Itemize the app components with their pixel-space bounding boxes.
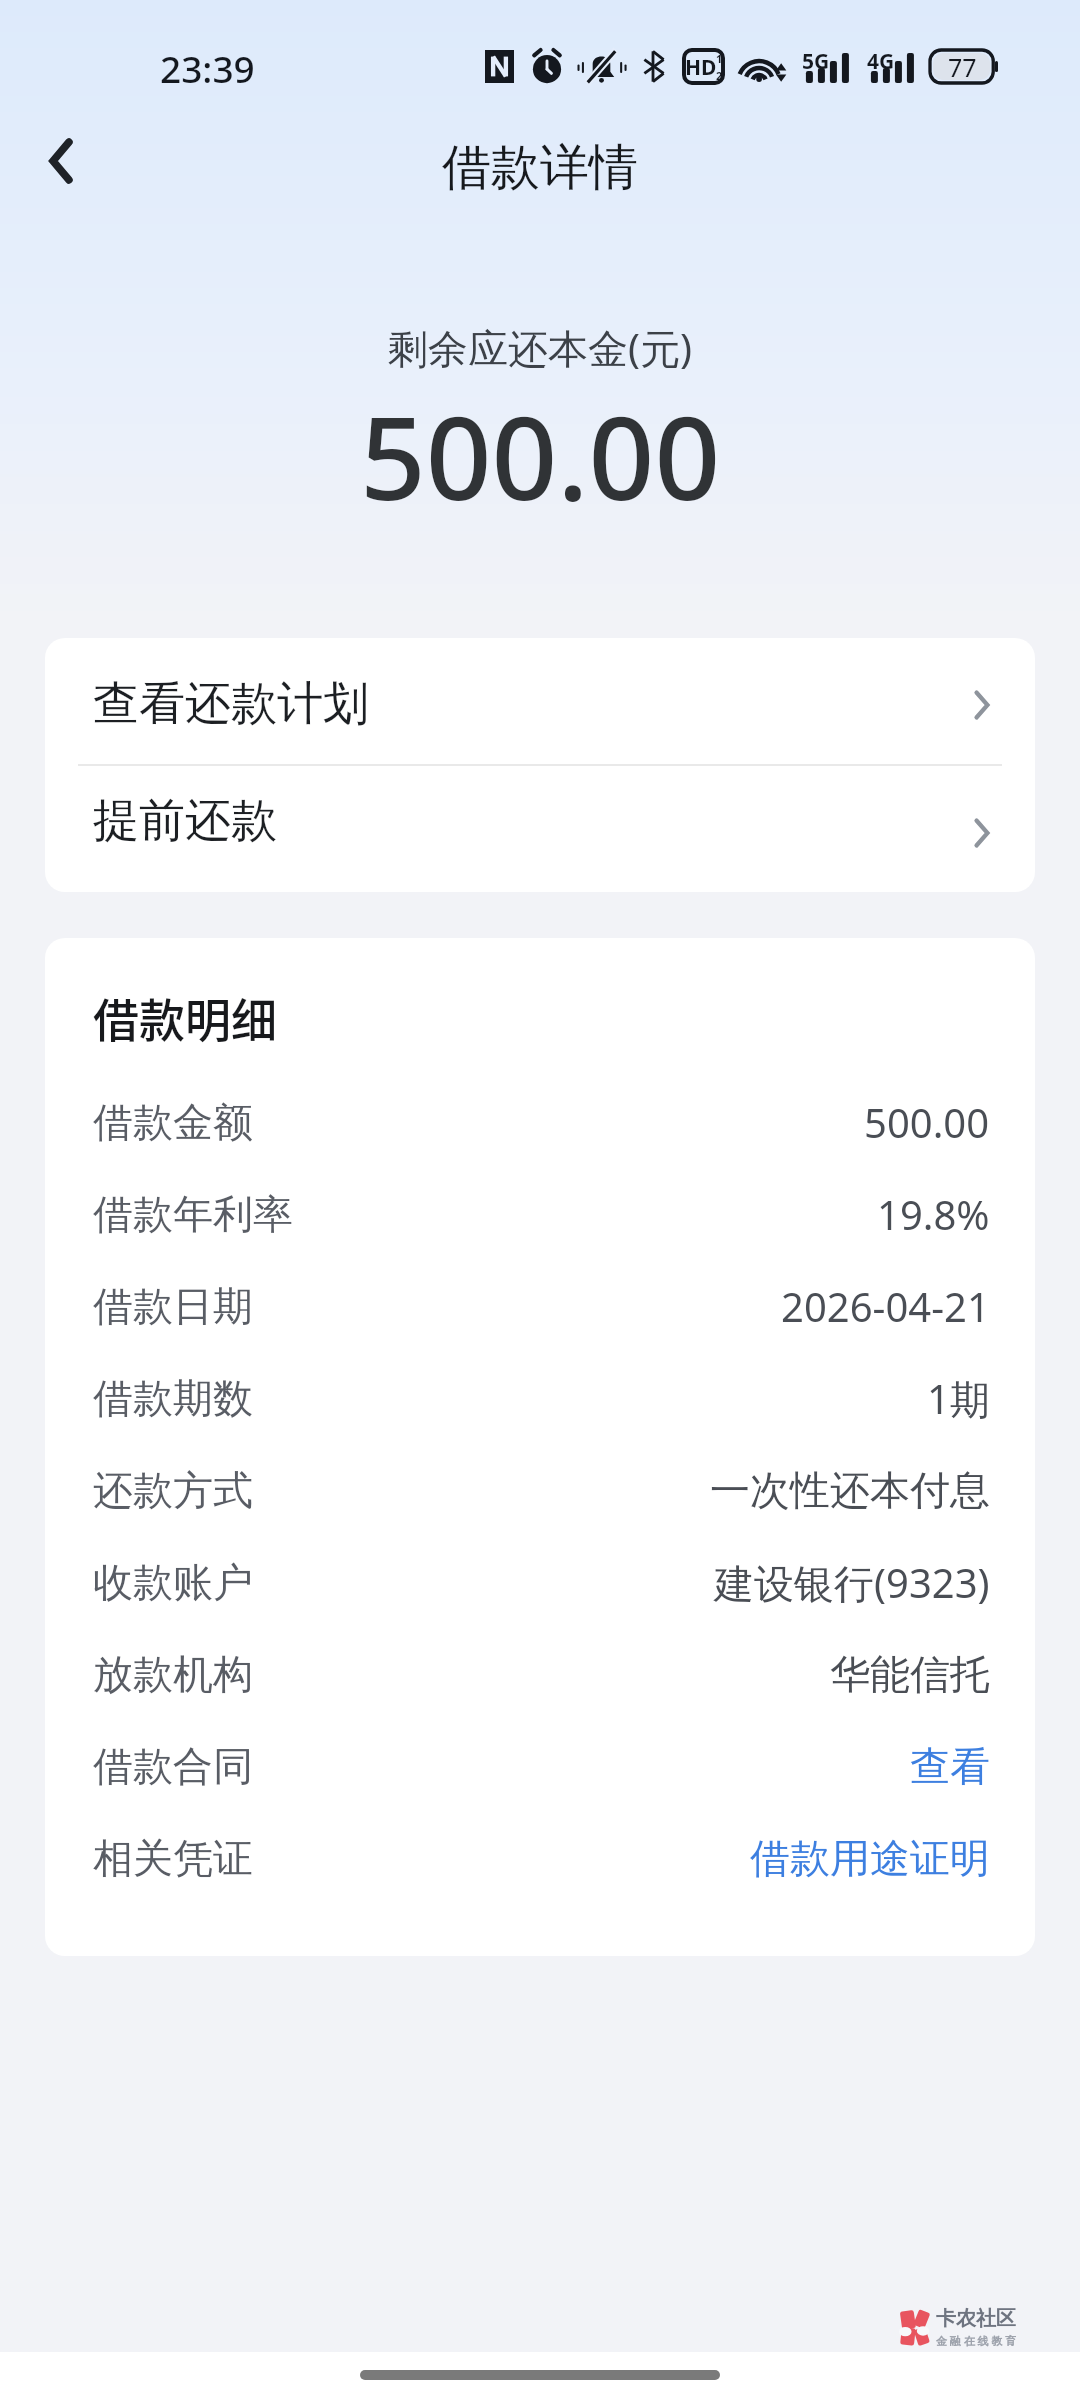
staticText: 收款账户 xyxy=(93,1557,253,1607)
staticText: 4G xyxy=(867,47,895,76)
button[interactable]: 查看 xyxy=(910,1720,990,1812)
staticText: 建设银行(9323) xyxy=(714,1555,990,1610)
staticText: 5G xyxy=(802,47,830,76)
staticText: 借款用途证明 xyxy=(750,1833,990,1883)
staticText: 借款明细 xyxy=(93,984,277,1051)
staticText: 一次性还本付息 xyxy=(710,1465,990,1515)
staticText: 500.00 xyxy=(360,377,721,534)
staticText: 2026-04-21 xyxy=(781,1279,990,1333)
staticText: 借款合同 xyxy=(93,1741,253,1791)
button[interactable]: Back xyxy=(1,106,121,216)
staticText: 500.00 xyxy=(864,1095,990,1149)
staticText: 查看还款计划 xyxy=(93,675,369,733)
staticText: 1 xyxy=(716,51,723,66)
button[interactable]: 借款用途证明 xyxy=(750,1812,990,1904)
staticText: 提前还款 xyxy=(93,792,277,850)
button[interactable]: 提前还款 xyxy=(45,766,1035,892)
staticText: HD xyxy=(685,53,717,82)
staticText: 2 xyxy=(716,68,723,83)
staticText: 华能信托 xyxy=(830,1649,990,1699)
staticText: 借款日期 xyxy=(93,1281,253,1331)
staticText: 借款金额 xyxy=(93,1097,253,1147)
staticText: 19.8% xyxy=(877,1187,990,1241)
staticText: 还款方式 xyxy=(93,1465,253,1515)
staticText: 1期 xyxy=(927,1371,990,1426)
staticText: 金 融 在 线 教 育 xyxy=(936,2333,1017,2348)
staticText: 借款详情 xyxy=(442,137,638,199)
staticText: 借款年利率 xyxy=(93,1189,293,1239)
staticText: 剩余应还本金(元) xyxy=(388,320,692,375)
staticText: 借款期数 xyxy=(93,1373,253,1423)
staticText: 23:39 xyxy=(160,43,255,93)
button[interactable]: 查看还款计划 xyxy=(45,638,1035,764)
staticText: 77 xyxy=(948,50,977,83)
staticText: 放款机构 xyxy=(93,1649,253,1699)
staticText: 相关凭证 xyxy=(93,1833,253,1883)
staticText: 查看 xyxy=(910,1741,990,1791)
staticText: 卡农社区 xyxy=(936,2306,1016,2331)
